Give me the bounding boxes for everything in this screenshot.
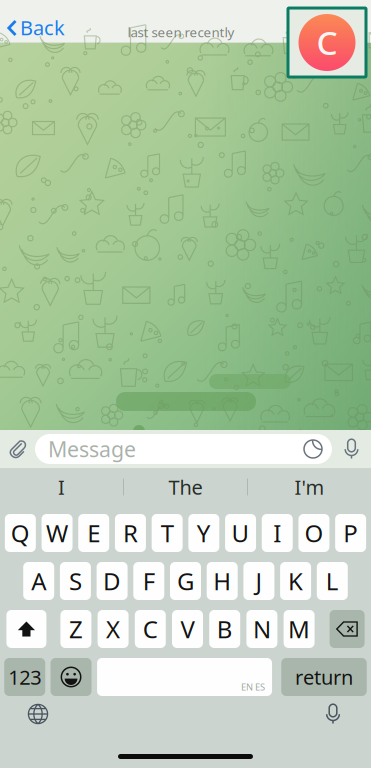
button[interactable]: Change keyboard bbox=[18, 697, 58, 731]
button[interactable]: Space bbox=[97, 658, 272, 696]
button[interactable]: O bbox=[298, 514, 329, 552]
staticText: L bbox=[326, 565, 339, 597]
staticText: H bbox=[213, 565, 231, 597]
staticText: C bbox=[143, 613, 158, 645]
button[interactable]: R bbox=[115, 514, 146, 552]
staticText: N bbox=[253, 613, 271, 645]
button[interactable]: J bbox=[243, 562, 274, 600]
button[interactable]: E bbox=[78, 514, 109, 552]
button[interactable]: U bbox=[225, 514, 256, 552]
button[interactable]: Y bbox=[188, 514, 219, 552]
staticText: U bbox=[231, 517, 249, 549]
button[interactable]: D bbox=[97, 562, 128, 600]
button[interactable]: W bbox=[41, 514, 72, 552]
staticText: E bbox=[87, 517, 100, 549]
button[interactable]: L bbox=[317, 562, 348, 600]
button[interactable]: H bbox=[207, 562, 238, 600]
button[interactable]: C bbox=[135, 610, 166, 648]
button[interactable]: return bbox=[281, 658, 367, 696]
staticText: A bbox=[31, 565, 46, 597]
button[interactable]: B bbox=[209, 610, 240, 648]
button[interactable]: S bbox=[60, 562, 91, 600]
button[interactable]: M bbox=[284, 610, 315, 648]
button[interactable]: X bbox=[98, 610, 129, 648]
staticText: W bbox=[46, 517, 68, 549]
button[interactable]: N bbox=[246, 610, 277, 648]
button[interactable]: 123 bbox=[4, 658, 45, 696]
staticText: J bbox=[255, 565, 262, 597]
staticText: B bbox=[217, 613, 233, 645]
staticText: return bbox=[295, 664, 353, 690]
button[interactable]: I'm bbox=[248, 468, 371, 506]
button[interactable]: G bbox=[170, 562, 201, 600]
button[interactable]: Emoji bbox=[50, 658, 91, 696]
staticText: V bbox=[180, 613, 194, 645]
button[interactable]: A bbox=[23, 562, 54, 600]
staticText: C bbox=[316, 20, 337, 64]
button[interactable]: The bbox=[124, 468, 247, 506]
button[interactable]: Record voice message bbox=[332, 430, 371, 468]
button[interactable]: T bbox=[152, 514, 183, 552]
button[interactable]: Shift bbox=[6, 610, 46, 648]
staticText: Y bbox=[197, 517, 211, 549]
button[interactable]: Back bbox=[0, 13, 73, 43]
staticText: G bbox=[177, 565, 194, 597]
staticText: S bbox=[69, 565, 82, 597]
button[interactable]: Stickers bbox=[303, 439, 323, 459]
staticText: Message bbox=[48, 435, 136, 463]
button[interactable]: Delete bbox=[330, 610, 365, 648]
button[interactable]: F bbox=[133, 562, 164, 600]
staticText: F bbox=[143, 565, 155, 597]
staticText: R bbox=[123, 517, 138, 549]
button[interactable]: V bbox=[172, 610, 203, 648]
staticText: O bbox=[304, 517, 323, 549]
button[interactable]: I bbox=[0, 468, 123, 506]
button[interactable]: K bbox=[280, 562, 311, 600]
button[interactable]: Z bbox=[60, 610, 91, 648]
staticText: Q bbox=[11, 517, 30, 549]
staticText: X bbox=[106, 613, 120, 645]
staticText: 123 bbox=[8, 664, 41, 690]
button[interactable]: Profile bbox=[288, 8, 366, 77]
button[interactable]: I bbox=[262, 514, 293, 552]
staticText: Back bbox=[20, 14, 65, 41]
button[interactable]: Dictate bbox=[313, 697, 353, 731]
button[interactable]: P bbox=[335, 514, 366, 552]
staticText: last seen recently bbox=[127, 23, 234, 41]
staticText: The bbox=[168, 474, 202, 500]
button[interactable]: Q bbox=[5, 514, 36, 552]
staticText: I'm bbox=[294, 474, 324, 500]
staticText: I bbox=[58, 474, 65, 500]
staticText: D bbox=[103, 565, 121, 597]
button[interactable]: Attach bbox=[0, 430, 35, 468]
staticText: Z bbox=[69, 613, 83, 645]
staticText: I bbox=[273, 517, 281, 549]
staticText: K bbox=[288, 565, 303, 597]
staticText: M bbox=[288, 613, 310, 645]
staticText: EN ES bbox=[241, 681, 265, 693]
staticText: P bbox=[343, 517, 358, 549]
staticText: T bbox=[161, 517, 174, 549]
